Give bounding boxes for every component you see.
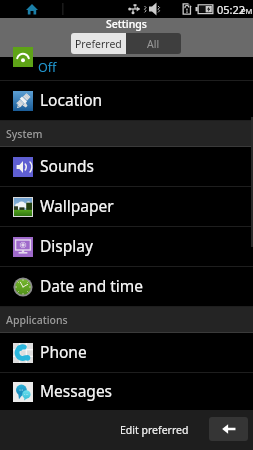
staticText: Date and time	[40, 275, 144, 296]
staticText: Preferred	[75, 37, 122, 51]
staticText: Messages	[40, 380, 113, 401]
button[interactable]: Location	[0, 81, 253, 120]
button[interactable]: All	[126, 33, 181, 54]
button[interactable]: Edit preferred	[115, 419, 194, 441]
staticText: System	[6, 127, 43, 141]
button[interactable]: Display	[0, 227, 253, 266]
button[interactable]: Date and time	[0, 267, 253, 306]
button[interactable]: Sounds	[0, 147, 253, 186]
staticText: 05:22	[217, 2, 246, 17]
button[interactable]: Off	[0, 57, 253, 80]
button[interactable]: Messages	[0, 373, 253, 410]
staticText: Applications	[6, 313, 68, 327]
button[interactable]: Wallpaper	[0, 187, 253, 226]
staticText: Settings	[106, 17, 147, 31]
staticText: Location	[40, 89, 103, 110]
button[interactable]: Phone	[0, 333, 253, 372]
staticText: Sounds	[40, 155, 95, 176]
button[interactable]: Back	[209, 417, 248, 441]
staticText: Phone	[40, 341, 87, 362]
staticText: All	[147, 37, 160, 51]
staticText: Off	[38, 59, 57, 76]
staticText: Display	[40, 235, 93, 256]
button[interactable]: Preferred	[71, 33, 126, 54]
staticText: Wallpaper	[40, 195, 114, 216]
staticText: PM	[241, 6, 253, 16]
